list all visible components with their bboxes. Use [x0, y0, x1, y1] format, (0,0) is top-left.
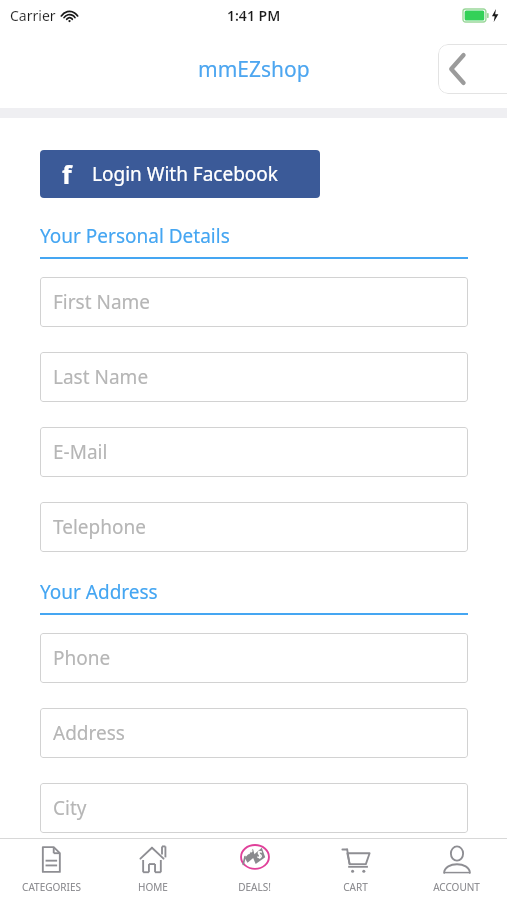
staticText: DEALS!: [238, 880, 271, 894]
button[interactable]: HOME: [102, 839, 204, 900]
staticText: Carrier: [10, 6, 56, 25]
button[interactable]: First Name: [40, 277, 468, 327]
button[interactable]: CATEGORIES: [0, 839, 102, 900]
staticText: Login With Facebook: [92, 161, 279, 187]
staticText: Address: [53, 720, 125, 746]
staticText: Last Name: [53, 364, 149, 390]
button[interactable]: Phone: [40, 633, 468, 683]
button[interactable]: Back: [438, 44, 507, 94]
button[interactable]: CART: [305, 839, 406, 900]
button[interactable]: f: [40, 150, 320, 198]
button[interactable]: E-Mail: [40, 427, 468, 477]
staticText: Phone: [53, 645, 111, 671]
staticText: E-Mail: [53, 439, 108, 465]
button[interactable]: ACCOUNT: [406, 839, 507, 900]
staticText: Telephone: [53, 514, 146, 540]
staticText: 1:41 PM: [227, 6, 281, 25]
staticText: f: [62, 157, 72, 191]
staticText: ACCOUNT: [433, 880, 480, 894]
staticText: CATEGORIES: [22, 880, 81, 894]
button[interactable]: DEALS!: [204, 839, 305, 900]
staticText: City: [53, 795, 87, 821]
button[interactable]: Telephone: [40, 502, 468, 552]
staticText: CART: [343, 880, 368, 894]
staticText: First Name: [53, 289, 151, 315]
staticText: mmEZshop: [198, 55, 310, 84]
staticText: HOME: [138, 880, 168, 894]
button[interactable]: City: [40, 783, 468, 833]
button[interactable]: Address: [40, 708, 468, 758]
staticText: Your Address: [40, 579, 158, 605]
button[interactable]: Last Name: [40, 352, 468, 402]
staticText: Your Personal Details: [40, 223, 230, 249]
